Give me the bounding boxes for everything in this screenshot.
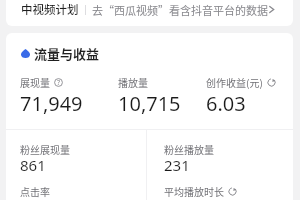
staticText: 播放量 [118, 75, 148, 89]
staticText: 10,715 [118, 90, 181, 117]
staticText: 粉丝播放量 [164, 142, 214, 156]
button[interactable]: 展现量 [20, 75, 83, 117]
staticText: 点击率 [20, 184, 50, 198]
staticText: 展现量 [20, 75, 50, 89]
staticText: ? [57, 78, 61, 87]
staticText: 去“西瓜视频”看含抖音平台的数据 [92, 2, 268, 18]
staticText: 6.03 [206, 90, 246, 117]
staticText: 71,949 [20, 90, 83, 117]
other: 说明 [54, 78, 63, 87]
staticText: 861 [20, 155, 46, 175]
button[interactable]: 点击率 [14, 178, 60, 200]
other: 刷新 [228, 187, 237, 196]
button[interactable]: 播放量 [118, 75, 181, 117]
button[interactable]: 粉丝展现量 [14, 136, 80, 182]
staticText: 创作收益(元) [206, 75, 263, 89]
staticText: 流量与收益 [34, 44, 100, 63]
button[interactable]: 平均播放时长 [158, 178, 247, 200]
other: 刷新 [267, 78, 276, 87]
button[interactable]: 创作收益(元) [206, 75, 276, 117]
button[interactable]: 粉丝播放量 [158, 136, 224, 182]
staticText: 粉丝展现量 [20, 142, 70, 156]
staticText: 中视频计划 [21, 1, 79, 18]
staticText: 平均播放时长 [164, 184, 224, 198]
staticText: 231 [164, 155, 190, 175]
other: 查看 [266, 4, 277, 15]
button[interactable]: 中视频计划 [6, 0, 293, 26]
